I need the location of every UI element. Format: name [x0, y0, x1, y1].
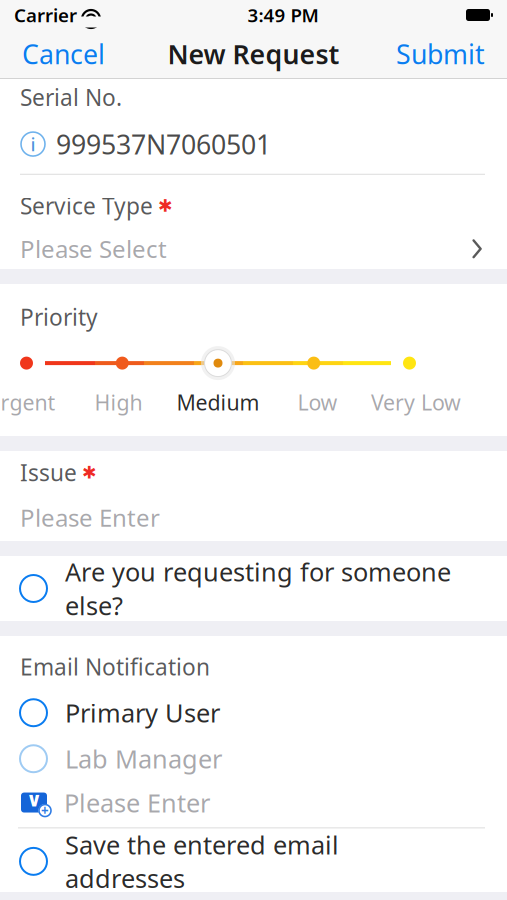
button[interactable]: Cancel — [6, 28, 121, 80]
staticText: Very Low — [371, 388, 461, 416]
button[interactable]: Save the entered email addresses — [0, 838, 507, 884]
button[interactable]: Submit — [380, 28, 501, 80]
button[interactable]: Primary User — [0, 690, 507, 736]
staticText: 999537N7060501 — [56, 126, 271, 162]
staticText: Service Type — [20, 191, 153, 221]
staticText: Cancel — [22, 36, 105, 72]
staticText: High — [94, 388, 142, 416]
staticText: New Request — [167, 36, 339, 72]
staticText: i — [30, 132, 35, 156]
staticText: Primary User — [65, 696, 220, 729]
staticText: ∨ — [26, 788, 42, 811]
button[interactable]: Please Select — [20, 221, 507, 265]
staticText: ✱ — [82, 463, 97, 482]
staticText: Submit — [396, 36, 485, 72]
staticText: Medium — [176, 388, 259, 416]
staticText: 3:49 PM — [247, 3, 318, 27]
staticText: Lab Manager — [65, 742, 222, 775]
staticText: Are you requesting for someone else? — [65, 555, 451, 622]
staticText: Issue — [20, 457, 77, 488]
button[interactable]: Are you requesting for someone else? — [0, 565, 507, 611]
staticText: Priority — [20, 302, 98, 332]
staticText: Low — [297, 388, 337, 416]
staticText: ✱ — [158, 196, 173, 216]
staticText: Carrier — [14, 3, 77, 27]
staticText: + — [41, 802, 49, 819]
staticText: Email Notification — [20, 652, 210, 682]
staticText: Please Enter — [20, 502, 160, 533]
staticText: Please Select — [20, 233, 167, 265]
button[interactable]: Lab Manager — [0, 736, 507, 782]
staticText: Please Enter — [64, 786, 210, 819]
button[interactable]: Please Enter — [20, 488, 507, 533]
button[interactable]: ∨ — [0, 782, 507, 828]
staticText: Save the entered email addresses — [65, 828, 339, 895]
staticText: Serial No. — [20, 82, 122, 112]
staticText: Urgent — [0, 388, 55, 416]
